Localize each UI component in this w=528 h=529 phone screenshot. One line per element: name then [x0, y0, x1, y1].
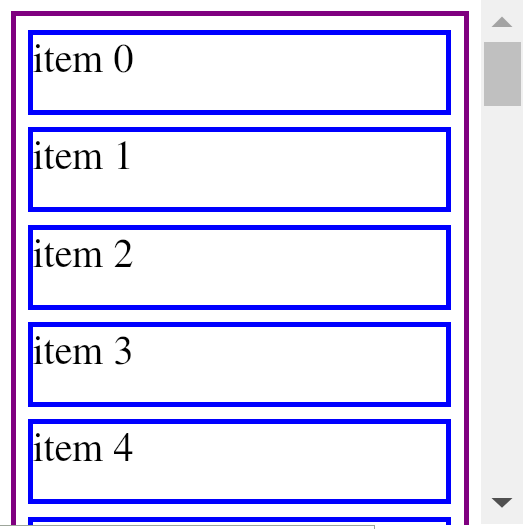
- staticText: item 4: [33, 429, 134, 469]
- button[interactable]: item 0: [28, 30, 451, 115]
- staticText: item 3: [33, 332, 134, 372]
- button[interactable]: item 1: [28, 127, 451, 212]
- button[interactable]: Scroll down: [481, 482, 523, 524]
- button[interactable]: Scroll up: [481, 0, 523, 42]
- staticText: item 1: [33, 137, 134, 177]
- button[interactable]: item 3: [28, 322, 451, 407]
- button[interactable]: item 5: [28, 517, 451, 525]
- staticText: item 0: [33, 40, 134, 80]
- staticText: item 2: [33, 235, 134, 275]
- button[interactable]: item 2: [28, 225, 451, 310]
- button[interactable]: item 4: [28, 419, 451, 504]
